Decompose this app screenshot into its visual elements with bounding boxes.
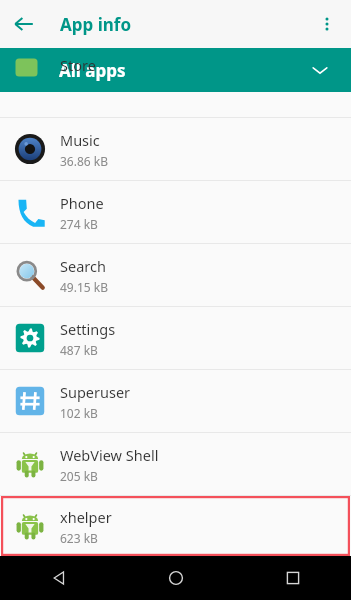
button[interactable]: Search [0,244,351,306]
button[interactable]: All apps [0,48,351,92]
staticText: 102 kB [60,405,98,421]
button[interactable]: Back [0,0,48,48]
button[interactable]: Superuser [0,370,351,432]
staticText: 623 kB [60,530,98,546]
button[interactable]: WebView Shell [0,433,351,495]
button[interactable]: Recent apps [234,556,351,600]
staticText: 205 kB [60,468,98,484]
staticText: Settings [60,319,116,339]
staticText: Phone [60,193,104,213]
staticText: 131 kB [60,78,98,80]
button[interactable]: Music [0,118,351,180]
button[interactable]: xhelper [0,496,351,556]
button[interactable]: More options [303,0,351,48]
staticText: Search [60,256,106,276]
staticText: WebView Shell [60,445,159,465]
staticText: 274 kB [60,216,98,232]
staticText: Superuser [60,382,131,402]
button[interactable]: Settings [0,307,351,369]
staticText: 49.15 kB [60,279,109,295]
staticText: App info [60,13,132,36]
button[interactable]: Home [117,556,234,600]
staticText: All apps [59,59,126,82]
button[interactable]: Phone [0,181,351,243]
staticText: 487 kB [60,342,98,358]
staticText: Music [60,130,100,150]
staticText: 36.86 kB [60,153,109,169]
staticText: Store [60,55,96,75]
staticText: xhelper [60,507,112,527]
button[interactable]: Back [0,556,117,600]
